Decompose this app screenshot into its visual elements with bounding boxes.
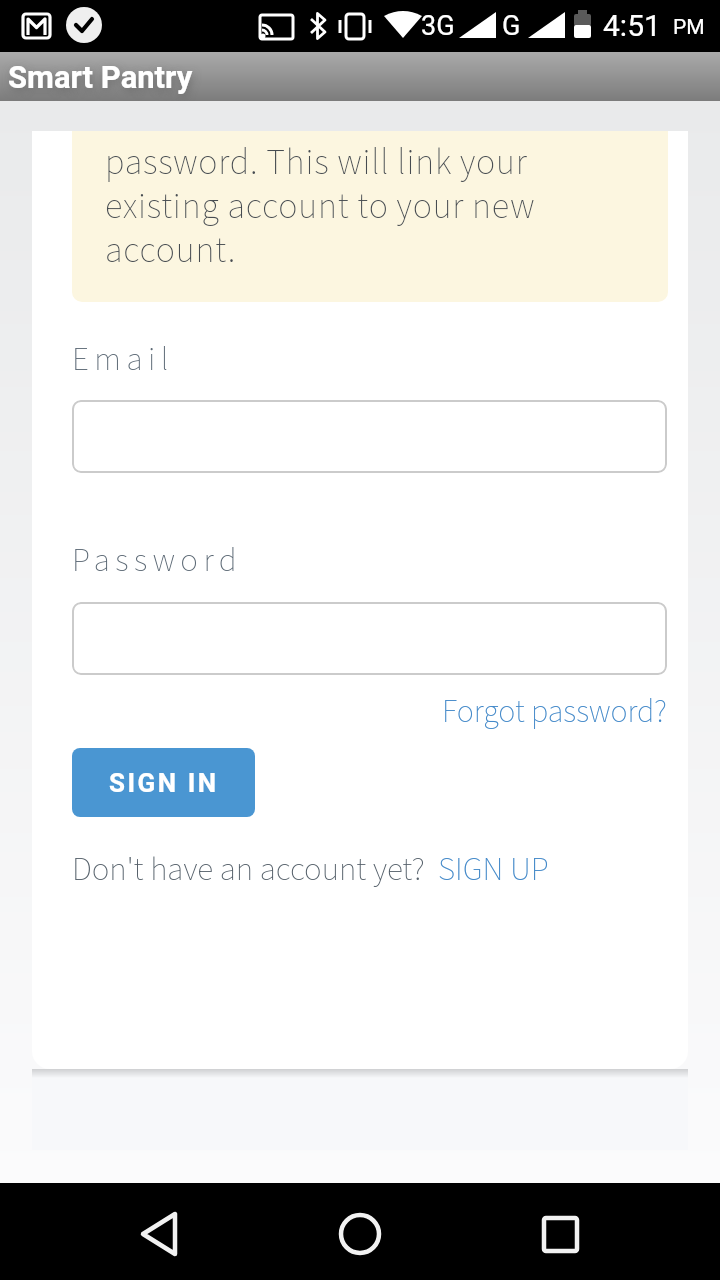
staticText: Password: [72, 537, 242, 584]
button[interactable]: [0, 1183, 240, 1280]
button[interactable]: [72, 400, 667, 473]
button[interactable]: SIGN IN: [72, 748, 255, 817]
staticText: 4:51: [603, 8, 661, 43]
staticText: PM: [673, 15, 705, 40]
staticText: Smart Pantry: [8, 59, 193, 95]
staticText: Don't have an account yet?: [72, 846, 425, 893]
button[interactable]: SIGN UP: [438, 846, 549, 893]
button[interactable]: [480, 1183, 720, 1280]
staticText: 3G: [421, 10, 455, 42]
staticText: Email: [72, 336, 174, 383]
staticText: G: [502, 10, 521, 42]
button[interactable]: Forgot password?: [442, 689, 667, 735]
button[interactable]: [240, 1183, 480, 1280]
button[interactable]: [72, 602, 667, 675]
staticText: password. This will link your existing a…: [105, 137, 536, 276]
staticText: SIGN IN: [109, 768, 219, 798]
